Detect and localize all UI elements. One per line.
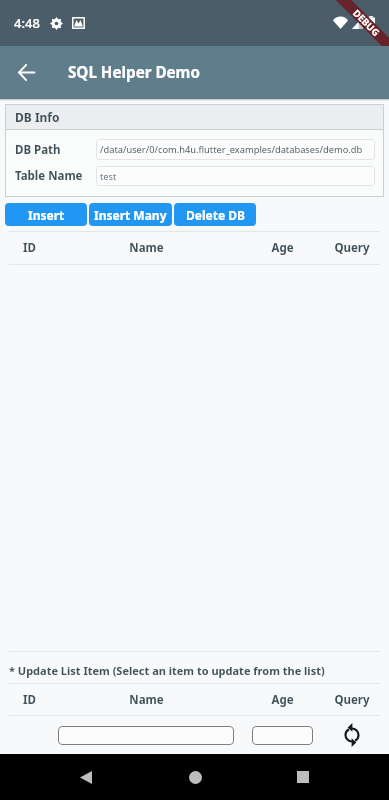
staticText: test: [100, 170, 117, 183]
staticText: Age: [271, 692, 294, 708]
button[interactable]: Home: [172, 754, 218, 800]
button[interactable]: Insert: [5, 203, 87, 226]
button[interactable]: [58, 726, 234, 745]
staticText: DB Path: [15, 142, 61, 158]
staticText: DB Info: [15, 109, 60, 125]
staticText: Query: [334, 692, 370, 708]
button[interactable]: Update record: [335, 718, 369, 752]
staticText: Name: [129, 240, 164, 256]
staticText: Name: [129, 692, 164, 708]
button[interactable]: Insert Many: [89, 203, 172, 226]
staticText: Insert Many: [94, 207, 167, 223]
staticText: Age: [271, 240, 294, 256]
staticText: /data/user/0/com.h4u.flutter_examples/da…: [100, 143, 363, 156]
staticText: * Update List Item (Select an item to up…: [9, 663, 325, 678]
staticText: Table Name: [15, 168, 83, 184]
button[interactable]: Back: [0, 46, 52, 99]
button[interactable]: test: [100, 166, 370, 186]
button[interactable]: Delete DB: [174, 203, 256, 226]
staticText: Delete DB: [186, 207, 245, 223]
button[interactable]: Recent apps: [280, 754, 326, 800]
staticText: ID: [23, 240, 36, 256]
staticText: Insert: [28, 207, 65, 223]
button[interactable]: Back: [63, 754, 109, 800]
button[interactable]: /data/user/0/com.h4u.flutter_examples/da…: [100, 139, 370, 160]
staticText: DEBUG: [350, 7, 383, 39]
staticText: Query: [334, 240, 370, 256]
staticText: SQL Helper Demo: [68, 62, 200, 83]
button[interactable]: [252, 726, 313, 745]
staticText: ID: [23, 692, 36, 708]
staticText: 4:48: [14, 14, 40, 32]
